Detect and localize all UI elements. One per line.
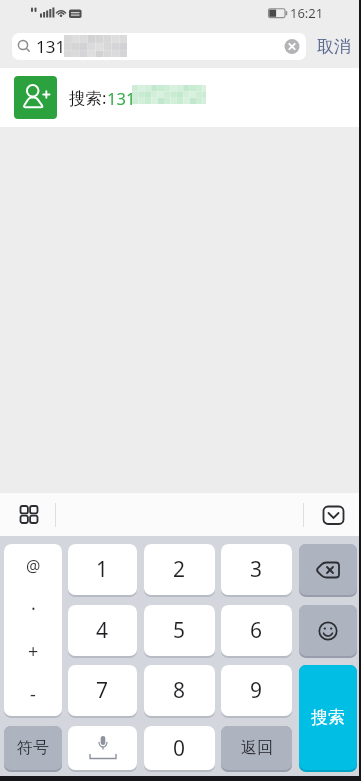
button[interactable]: 4 — [68, 605, 137, 658]
button[interactable] — [12, 498, 46, 531]
staticText: 0 — [173, 734, 186, 763]
button[interactable] — [316, 498, 352, 531]
button[interactable]: 6 — [221, 605, 292, 658]
staticText: 9 — [250, 676, 263, 705]
staticText: 16:21 — [290, 4, 324, 22]
staticText: 搜索 — [311, 707, 345, 728]
button[interactable] — [280, 34, 305, 59]
button[interactable] — [299, 605, 357, 658]
button[interactable] — [68, 726, 137, 772]
button[interactable]: 取消 — [311, 26, 357, 67]
button[interactable]: 5 — [144, 605, 215, 658]
staticText: 6 — [250, 616, 263, 645]
staticText: @ — [26, 555, 41, 577]
staticText: 3 — [250, 555, 263, 584]
staticText: 131 — [36, 35, 66, 58]
staticText: 2 — [173, 555, 186, 584]
button[interactable]: 2 — [144, 544, 215, 597]
button[interactable]: 符号 — [4, 726, 62, 772]
button[interactable]: 9 — [221, 665, 292, 718]
button[interactable]: @ — [4, 544, 62, 718]
staticText: 131 — [107, 87, 136, 109]
button[interactable]: 1 — [68, 544, 137, 597]
button[interactable]: 131 — [12, 33, 306, 60]
button[interactable]: 搜索 — [299, 665, 357, 772]
button[interactable]: 0 — [144, 726, 215, 772]
staticText: 符号 — [17, 738, 49, 758]
staticText: 返回 — [241, 738, 273, 758]
staticText: 搜索: — [69, 86, 107, 109]
staticText: - — [30, 682, 36, 707]
staticText: 取消 — [317, 36, 351, 57]
button[interactable]: 7 — [68, 665, 137, 718]
staticText: 8 — [173, 676, 186, 705]
staticText: 5 — [173, 616, 186, 645]
button[interactable]: 8 — [144, 665, 215, 718]
staticText: 4 — [96, 616, 109, 645]
staticText: + — [28, 639, 39, 664]
staticText: 1 — [96, 555, 109, 584]
button[interactable] — [299, 544, 357, 597]
button[interactable]: 搜索: — [0, 68, 361, 127]
staticText: · — [31, 596, 36, 621]
button[interactable]: 3 — [221, 544, 292, 597]
button[interactable]: 返回 — [221, 726, 292, 772]
staticText: 7 — [96, 676, 109, 705]
